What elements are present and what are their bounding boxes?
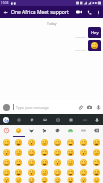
button[interactable]: Hey — [88, 27, 101, 38]
button[interactable]: Emoji 4_0 — [0, 177, 12, 183]
staticText: Today — [47, 21, 57, 26]
button[interactable]: Emoji 0_6 — [77, 137, 90, 147]
button[interactable]: Emoji 3_7 — [90, 167, 103, 177]
button[interactable]: Emoji 0_3 — [38, 137, 51, 147]
button[interactable]: Emoji 1_5 — [64, 147, 77, 157]
button[interactable]: Objects — [77, 125, 90, 137]
button[interactable]: Emoji 1_7 — [90, 147, 103, 157]
button[interactable]: Emoji 2_6 — [77, 157, 90, 167]
button[interactable]: Video call — [73, 6, 84, 18]
staticText: One Africa Meet support — [11, 9, 69, 16]
button[interactable]: Call — [84, 6, 94, 18]
button[interactable]: More keyboard options — [78, 114, 91, 125]
button[interactable]: Voice input — [91, 114, 103, 125]
button[interactable]: Emoji 1_0 — [0, 147, 12, 157]
staticText: Type your message — [16, 105, 49, 110]
button[interactable]: Emoji 3_5 — [64, 167, 77, 177]
button[interactable]: Translate — [51, 114, 64, 125]
button[interactable]: Gboard settings — [0, 114, 12, 125]
button[interactable]: Emoji 3_1 — [12, 167, 25, 177]
button[interactable]: Emoji 1_1 — [12, 147, 25, 157]
button[interactable]: Emoji 4_4 — [51, 177, 64, 183]
button[interactable]: Emoji 1_2 — [25, 147, 38, 157]
button[interactable]: Emoji 3_4 — [51, 167, 64, 177]
button[interactable]: Clipboard — [64, 114, 77, 125]
staticText: 10:08 — [1, 1, 9, 5]
button[interactable]: Emoji 1_4 — [51, 147, 64, 157]
button[interactable]: Voice message — [94, 100, 102, 114]
button[interactable]: Emoji keyboard — [3, 104, 10, 111]
button[interactable]: Smileys — [12, 125, 25, 137]
button[interactable]: Emoji 4_3 — [38, 177, 51, 183]
button[interactable]: Emoji 4_2 — [25, 177, 38, 183]
button[interactable]: Recent — [0, 125, 12, 137]
button[interactable] — [88, 40, 101, 51]
button[interactable]: Food — [38, 125, 51, 137]
button[interactable]: Emoji 3_0 — [0, 167, 12, 177]
button[interactable]: Emoji 1_6 — [77, 147, 90, 157]
button[interactable]: Emoji 0_5 — [64, 137, 77, 147]
button[interactable]: Emoji 0_1 — [12, 137, 25, 147]
button[interactable]: Emoji 4_6 — [77, 177, 90, 183]
button[interactable]: GIF — [25, 114, 38, 125]
button[interactable]: Emoji 0_2 — [25, 137, 38, 147]
button[interactable]: Attach file — [76, 100, 85, 114]
button[interactable]: Emoji 3_3 — [38, 167, 51, 177]
button[interactable]: Back — [0, 6, 11, 18]
button[interactable]: Emoji 2_7 — [90, 157, 103, 167]
staticText: Hey — [91, 30, 99, 36]
button[interactable]: Themes — [12, 114, 25, 125]
button[interactable]: Emoji 4_5 — [64, 177, 77, 183]
button[interactable]: Animals — [25, 125, 38, 137]
staticText: 12:30 PM — [75, 35, 86, 38]
button[interactable]: Emoji 2_4 — [51, 157, 64, 167]
button[interactable]: Emoji 2_0 — [0, 157, 12, 167]
button[interactable]: Travel — [64, 125, 77, 137]
button[interactable]: Emoji 0_4 — [51, 137, 64, 147]
button[interactable]: Emoji 0_0 — [0, 137, 12, 147]
button[interactable]: Emoji 0_7 — [90, 137, 103, 147]
button[interactable]: Emoji 4_7 — [90, 177, 103, 183]
button[interactable]: Emoji 2_3 — [38, 157, 51, 167]
button[interactable]: More options — [94, 6, 103, 18]
button[interactable]: Emoji 1_3 — [38, 147, 51, 157]
button[interactable]: Emoji 3_6 — [77, 167, 90, 177]
button[interactable]: Emoji 3_2 — [25, 167, 38, 177]
button[interactable]: Emoji 2_2 — [25, 157, 38, 167]
button[interactable]: Backspace — [90, 125, 103, 137]
button[interactable]: Stickers — [38, 114, 51, 125]
button[interactable]: Emoji 2_1 — [12, 157, 25, 167]
staticText: 12:31 PM — [75, 48, 86, 51]
button[interactable]: Camera — [85, 100, 94, 114]
button[interactable]: Activities — [51, 125, 64, 137]
button[interactable]: Emoji 4_1 — [12, 177, 25, 183]
button[interactable]: Emoji 2_5 — [64, 157, 77, 167]
